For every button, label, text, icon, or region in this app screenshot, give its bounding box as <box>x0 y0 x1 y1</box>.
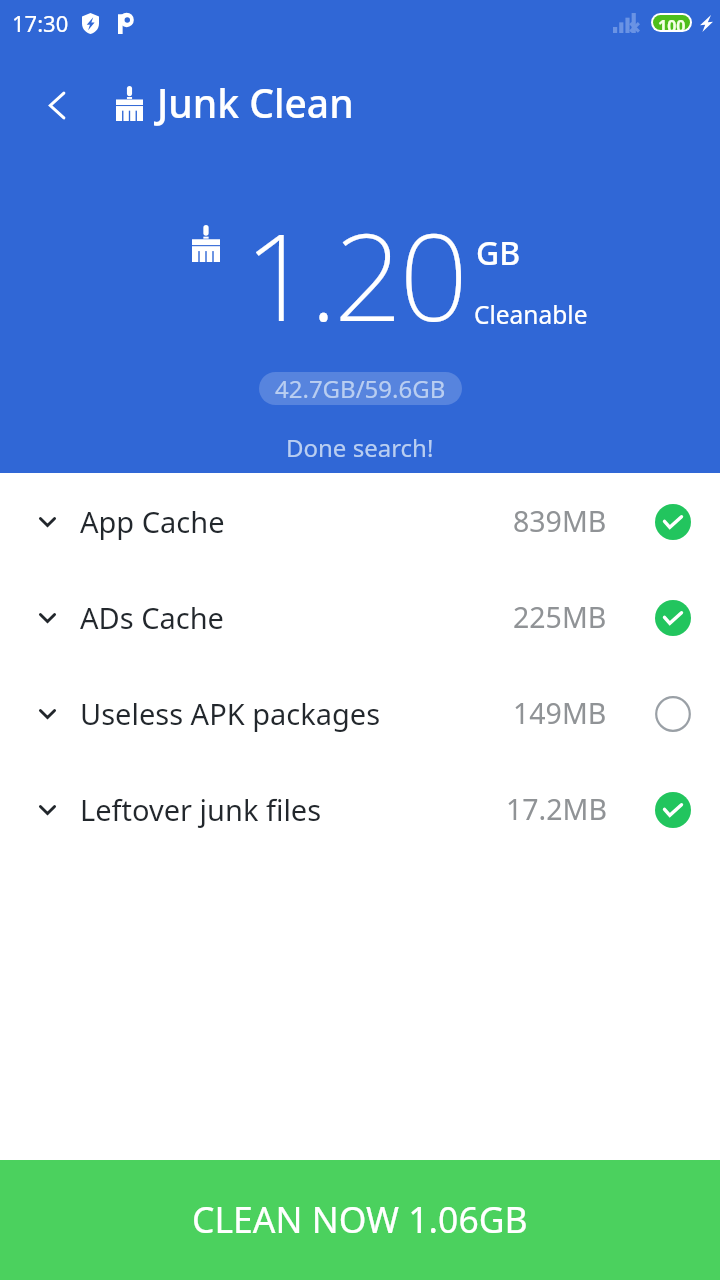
button[interactable]: CLEAN NOW 1.06GB <box>0 1160 720 1280</box>
staticText: 42.7GB/59.6GB <box>275 372 446 405</box>
button[interactable]: Back <box>32 80 82 130</box>
button[interactable]: Useless APK packages <box>0 666 720 762</box>
staticText: 839MB <box>513 502 607 541</box>
staticText: Leftover junk files <box>80 790 322 829</box>
staticText: Done search! <box>286 431 434 464</box>
staticText: 17:30 <box>12 8 69 38</box>
staticText: App Cache <box>80 502 225 541</box>
staticText: 149MB <box>513 694 607 733</box>
staticText: Useless APK packages <box>80 694 381 733</box>
staticText: ADs Cache <box>80 598 224 637</box>
button[interactable]: App Cache <box>0 474 720 570</box>
button[interactable]: ADs Cache <box>0 570 720 666</box>
staticText: CLEAN NOW 1.06GB <box>192 1195 528 1243</box>
staticText: 100 <box>658 15 686 30</box>
button[interactable]: Leftover junk files <box>0 762 720 858</box>
staticText: Cleanable <box>474 298 588 331</box>
staticText: 17.2MB <box>506 790 607 829</box>
staticText: GB <box>476 231 521 275</box>
staticText: Junk Clean <box>157 76 354 129</box>
staticText: 1.20 <box>244 192 465 357</box>
staticText: 225MB <box>513 598 607 637</box>
